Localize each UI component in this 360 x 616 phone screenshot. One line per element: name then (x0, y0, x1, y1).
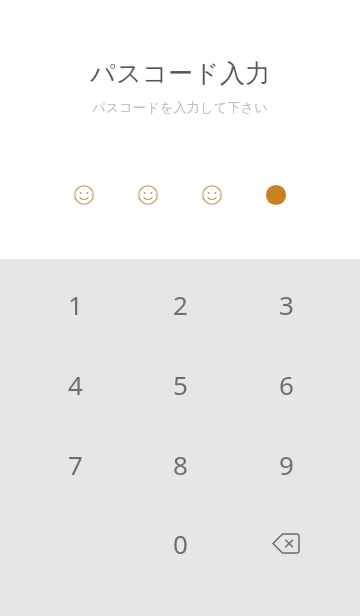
button[interactable]: 4 (31, 347, 119, 421)
staticText: 9 (279, 447, 294, 482)
staticText: 5 (173, 367, 188, 402)
staticText: 4 (68, 367, 83, 402)
button[interactable]: 6 (242, 347, 330, 421)
button[interactable]: 2 (136, 267, 224, 341)
button[interactable]: 7 (31, 427, 119, 501)
button[interactable]: 9 (242, 427, 330, 501)
staticText: パスコード入力 (90, 58, 271, 89)
staticText: 7 (68, 447, 83, 482)
button[interactable]: 3 (242, 267, 330, 341)
staticText: パスコードを入力して下さい (92, 99, 268, 115)
staticText: 3 (279, 287, 294, 322)
staticText: 0 (173, 526, 188, 561)
staticText: 8 (173, 447, 188, 482)
staticText: 1 (68, 287, 83, 322)
button[interactable]: 0 (136, 506, 224, 580)
button[interactable]: 1 (31, 267, 119, 341)
staticText: 6 (279, 367, 294, 402)
button[interactable]: 5 (136, 347, 224, 421)
button[interactable]: Delete (242, 506, 330, 580)
staticText: 2 (173, 287, 188, 322)
button[interactable]: 8 (136, 427, 224, 501)
